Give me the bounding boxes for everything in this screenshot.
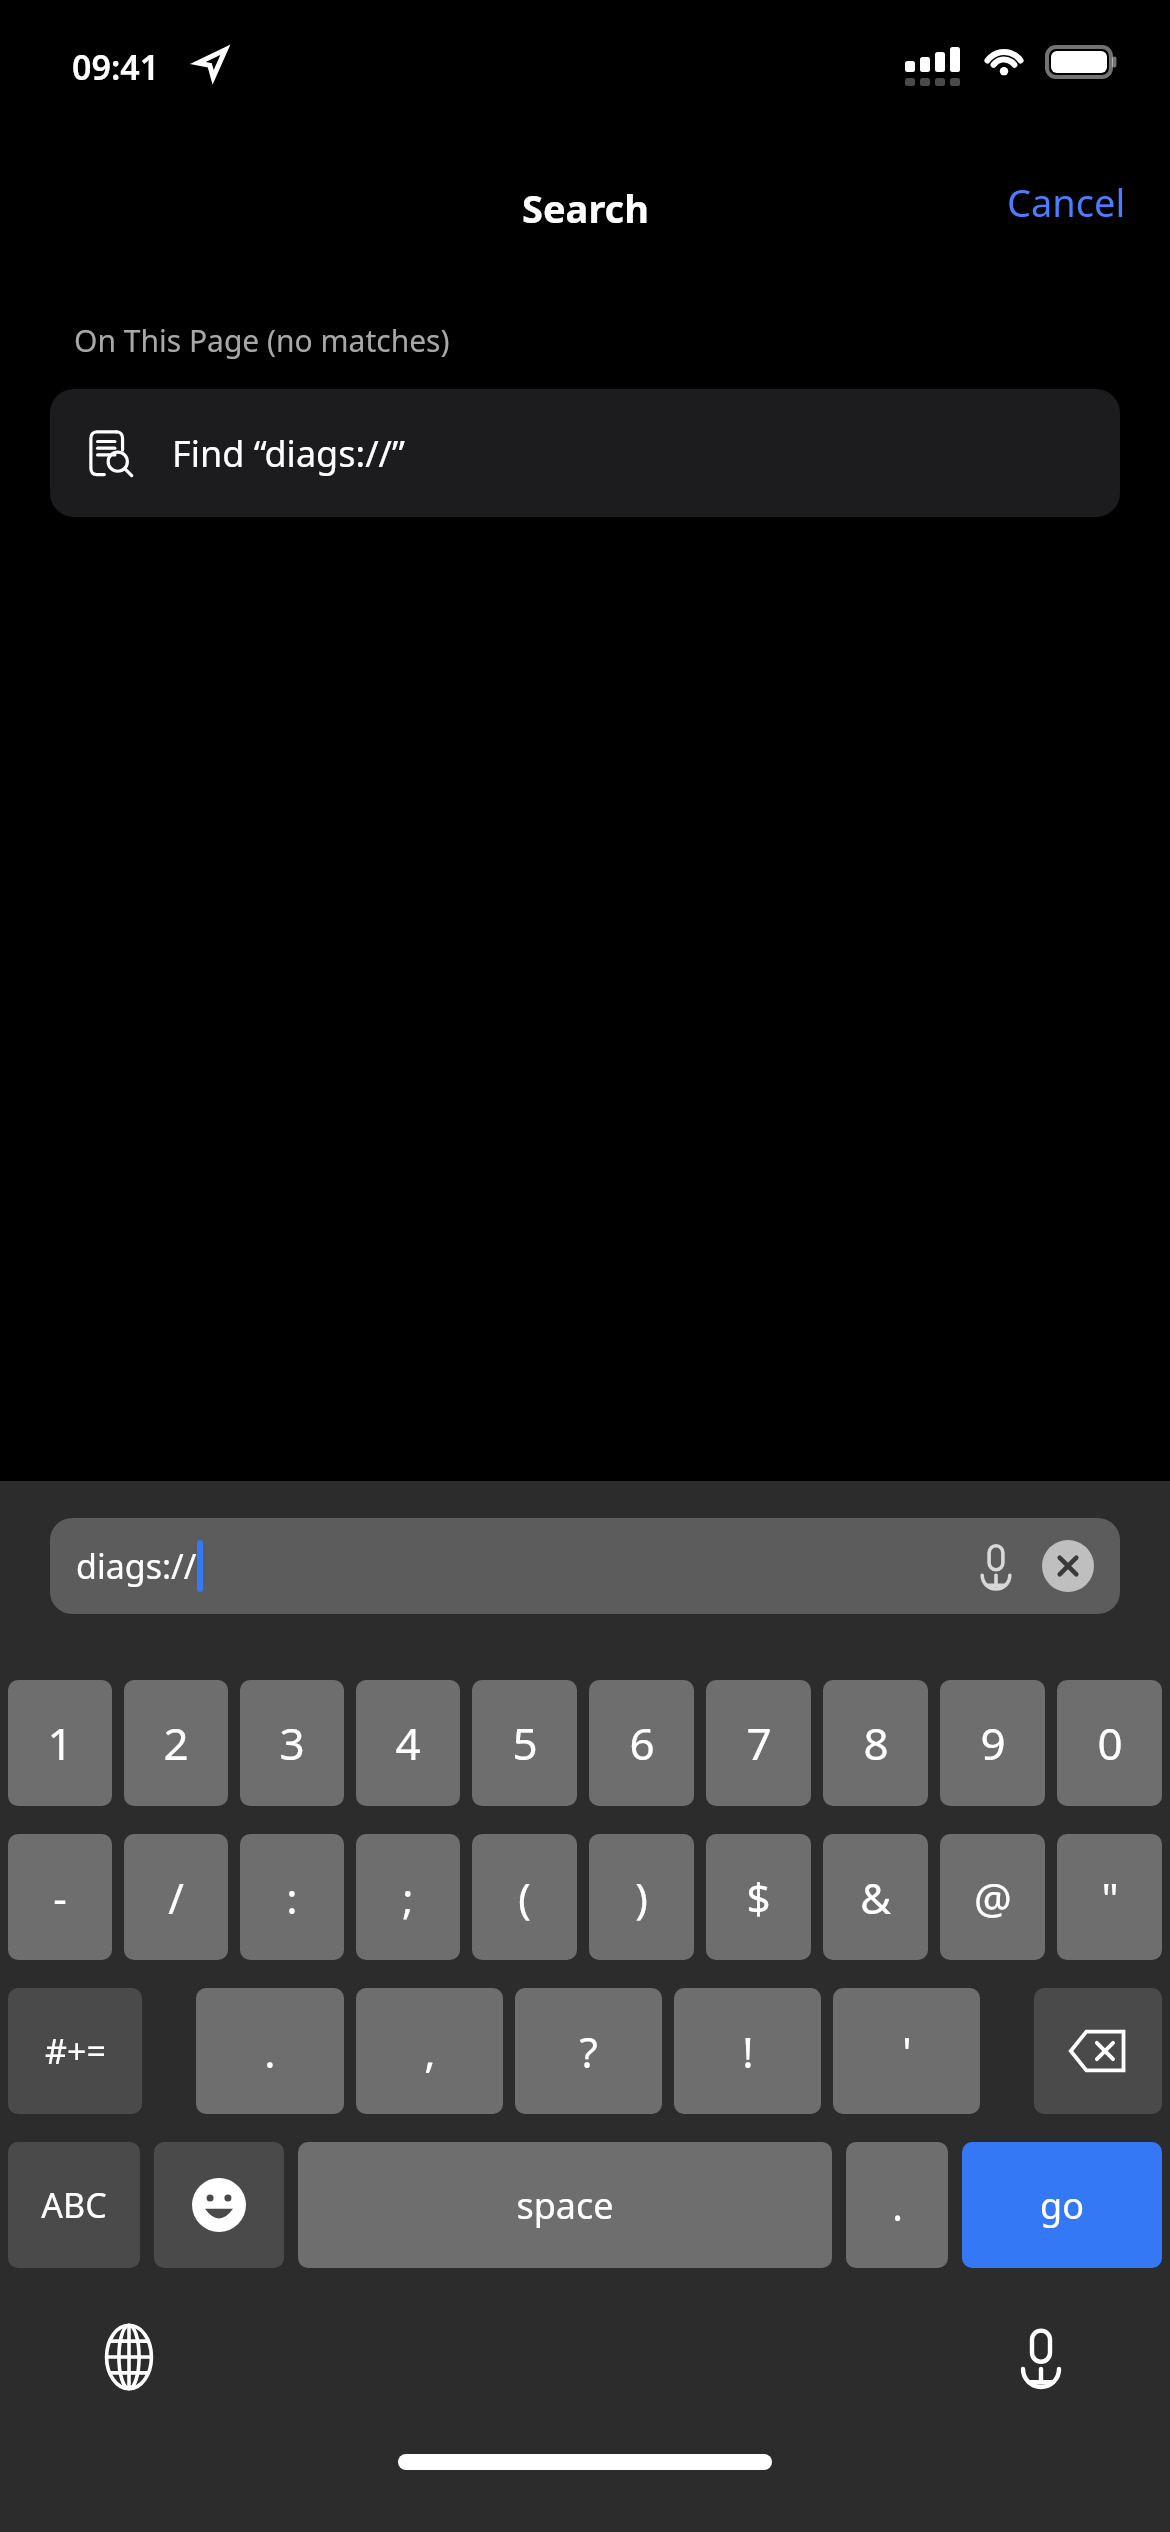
staticText: Search: [522, 182, 649, 234]
button[interactable]: /: [124, 1834, 228, 1960]
button[interactable]: Dictate: [966, 1536, 1026, 1596]
staticText: 6: [629, 1713, 655, 1773]
button[interactable]: ": [1057, 1834, 1162, 1960]
button[interactable]: 4: [356, 1680, 460, 1806]
staticText: $: [746, 1869, 771, 1926]
staticText: ABC: [41, 2182, 107, 2228]
button[interactable]: go: [962, 2142, 1162, 2268]
button[interactable]: .: [846, 2142, 948, 2268]
staticText: /: [168, 1869, 184, 1926]
button[interactable]: 1: [8, 1680, 112, 1806]
button[interactable]: @: [940, 1834, 1045, 1960]
button[interactable]: 5: [472, 1680, 577, 1806]
staticText: On This Page (no matches): [74, 320, 450, 361]
staticText: 0: [1097, 1713, 1123, 1773]
staticText: :: [286, 1869, 298, 1926]
button[interactable]: -: [8, 1834, 112, 1960]
staticText: 4: [395, 1713, 421, 1773]
button[interactable]: $: [706, 1834, 811, 1960]
button[interactable]: ,: [356, 1988, 503, 2114]
staticText: .: [892, 2178, 903, 2232]
staticText: 8: [863, 1713, 889, 1773]
button[interactable]: ': [833, 1988, 980, 2114]
button[interactable]: Clear text: [1042, 1540, 1094, 1592]
staticText: 5: [512, 1713, 538, 1773]
staticText: ?: [579, 2023, 598, 2080]
staticText: 9: [980, 1713, 1006, 1773]
button[interactable]: 6: [589, 1680, 694, 1806]
staticText: ": [1101, 1869, 1119, 1926]
staticText: 3: [279, 1713, 305, 1773]
staticText: ,: [424, 2023, 436, 2080]
staticText: &: [860, 1869, 891, 1926]
button[interactable]: 7: [706, 1680, 811, 1806]
button[interactable]: &: [823, 1834, 928, 1960]
staticText: 7: [746, 1713, 772, 1773]
staticText: 1: [47, 1713, 73, 1773]
button[interactable]: 9: [940, 1680, 1045, 1806]
button[interactable]: Dictation: [998, 2314, 1084, 2400]
button[interactable]: :: [240, 1834, 344, 1960]
staticText: -: [53, 1869, 67, 1926]
staticText: Find “diags://”: [172, 429, 405, 478]
staticText: !: [742, 2023, 754, 2080]
button[interactable]: !: [674, 1988, 821, 2114]
button[interactable]: diags://: [50, 1518, 1120, 1614]
button[interactable]: Find “diags://”: [50, 389, 1120, 517]
staticText: #+=: [45, 2028, 106, 2074]
button[interactable]: space: [298, 2142, 832, 2268]
staticText: ): [635, 1869, 648, 1926]
staticText: space: [516, 2181, 614, 2230]
button[interactable]: Change keyboard language: [86, 2314, 172, 2400]
button[interactable]: Backspace: [1034, 1988, 1162, 2114]
staticText: diags://: [76, 1543, 197, 1589]
staticText: Cancel: [1007, 176, 1126, 228]
button[interactable]: Cancel: [1001, 170, 1132, 234]
button[interactable]: Emoji: [154, 2142, 284, 2268]
staticText: 2: [163, 1713, 189, 1773]
staticText: .: [264, 2023, 276, 2080]
button[interactable]: #+=: [8, 1988, 142, 2114]
button[interactable]: 2: [124, 1680, 228, 1806]
button[interactable]: ;: [356, 1834, 460, 1960]
staticText: go: [1040, 2181, 1084, 2230]
staticText: 09:41: [72, 44, 160, 90]
staticText: ': [902, 2023, 912, 2080]
button[interactable]: .: [196, 1988, 344, 2114]
button[interactable]: 8: [823, 1680, 928, 1806]
button[interactable]: ): [589, 1834, 694, 1960]
button[interactable]: ?: [515, 1988, 662, 2114]
button[interactable]: 0: [1057, 1680, 1162, 1806]
staticText: (: [518, 1869, 531, 1926]
button[interactable]: (: [472, 1834, 577, 1960]
staticText: @: [974, 1869, 1012, 1926]
button[interactable]: 3: [240, 1680, 344, 1806]
button[interactable]: ABC: [8, 2142, 140, 2268]
staticText: ;: [402, 1869, 414, 1926]
